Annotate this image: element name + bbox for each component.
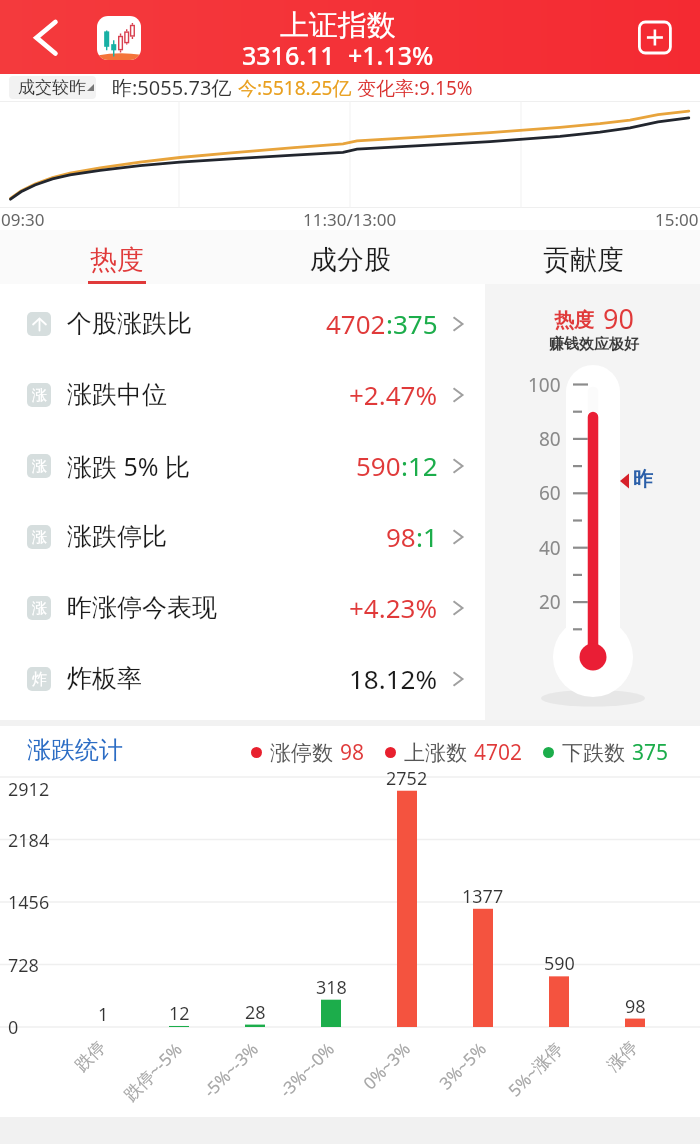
staticText: 3316.11 — [242, 38, 335, 72]
staticText: 100 — [528, 372, 561, 398]
staticText: +4.23% — [349, 590, 438, 625]
staticText: 2184 — [8, 828, 50, 853]
staticText: 2752 — [386, 766, 428, 791]
button[interactable]: 炸 — [0, 643, 485, 714]
button[interactable]: 涨 — [0, 430, 485, 501]
staticText: 3%~5% — [434, 1037, 491, 1094]
staticText: 跌停 — [71, 1037, 110, 1076]
staticText: 炸板率 — [67, 663, 142, 694]
staticText: 贡献度 — [543, 243, 624, 277]
staticText: 0 — [8, 1015, 19, 1040]
staticText: +2.47% — [349, 377, 438, 412]
staticText: 318 — [316, 975, 347, 1000]
staticText: :375 — [386, 306, 438, 341]
staticText: 1 — [98, 1002, 109, 1027]
staticText: 590 — [544, 951, 575, 976]
staticText: 80 — [539, 426, 561, 452]
button[interactable]: App icon — [97, 16, 141, 60]
staticText: 5%~涨停 — [503, 1037, 567, 1101]
staticText: 590 — [356, 448, 401, 483]
staticText: 40 — [539, 535, 561, 561]
staticText: 12 — [169, 1001, 190, 1026]
staticText: 热度 — [90, 243, 144, 277]
staticText: 上涨数 — [404, 740, 467, 766]
staticText: 98 — [340, 738, 365, 767]
button[interactable]: Back — [20, 12, 70, 62]
staticText: +1.13% — [348, 38, 434, 72]
button[interactable]: 贡献度 — [467, 230, 700, 284]
staticText: 375 — [632, 738, 669, 767]
button[interactable]: 涨 — [0, 359, 485, 430]
staticText: 炸 — [32, 670, 47, 689]
staticText: 涨跌停比 — [67, 521, 167, 552]
button[interactable]: 个股涨跌比 — [0, 288, 485, 359]
button[interactable]: 涨 — [0, 501, 485, 572]
staticText: 0%~3% — [358, 1037, 415, 1094]
button[interactable]: 成分股 — [234, 230, 467, 284]
staticText: 涨停数 — [270, 740, 333, 766]
staticText: 昨 — [633, 467, 653, 492]
staticText: :1 — [416, 519, 438, 554]
staticText: 98 — [625, 994, 646, 1019]
staticText: 昨涨停今表现 — [67, 592, 217, 623]
staticText: 昨:5055.73亿 — [112, 74, 232, 101]
staticText: 成交较昨 — [18, 77, 86, 98]
button[interactable]: 成交较昨 — [9, 76, 96, 99]
staticText: 09:30 — [1, 208, 45, 230]
staticText: 热度 — [554, 308, 594, 333]
staticText: -3%~-0% — [274, 1037, 339, 1102]
staticText: 60 — [539, 480, 561, 506]
staticText: 赚钱效应极好 — [549, 335, 639, 354]
staticText: 1456 — [8, 890, 50, 915]
staticText: 涨跌统计 — [27, 735, 123, 765]
staticText: 涨 — [32, 528, 47, 547]
staticText: 20 — [539, 589, 561, 615]
staticText: :12 — [401, 448, 438, 483]
staticText: 涨 — [32, 599, 47, 618]
staticText: 成分股 — [310, 243, 391, 277]
staticText: 90 — [603, 300, 634, 337]
staticText: 2912 — [8, 777, 50, 802]
staticText: 4702 — [326, 306, 386, 341]
button[interactable]: 涨 — [0, 572, 485, 643]
staticText: 98 — [386, 519, 416, 554]
staticText: 上证指数 — [280, 7, 396, 44]
staticText: 涨 — [32, 386, 47, 405]
staticText: 变化率:9.15% — [357, 75, 473, 101]
staticText: 28 — [245, 1000, 266, 1025]
staticText: 18.12% — [349, 661, 438, 696]
staticText: 涨 — [32, 457, 47, 476]
staticText: 今:5518.25亿 — [238, 75, 352, 101]
staticText: 4702 — [474, 738, 523, 767]
staticText: 728 — [8, 953, 39, 978]
staticText: 涨跌 5% 比 — [67, 449, 191, 483]
staticText: 1377 — [462, 884, 504, 909]
button[interactable]: Add to watchlist — [633, 16, 677, 60]
staticText: 涨停 — [603, 1037, 642, 1076]
staticText: 15:00 — [655, 208, 699, 230]
staticText: -5%~-3% — [198, 1037, 263, 1102]
staticText: 个股涨跌比 — [67, 308, 192, 339]
staticText: 11:30/13:00 — [303, 208, 397, 230]
staticText: 下跌数 — [562, 740, 625, 766]
staticText: 跌停~-5% — [119, 1037, 187, 1106]
staticText: 涨跌中位 — [67, 379, 167, 410]
button[interactable]: 热度 — [0, 230, 234, 284]
